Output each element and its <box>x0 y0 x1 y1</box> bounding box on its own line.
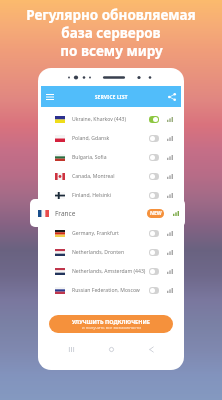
staticText: Germany, Frankfurt <box>72 230 119 237</box>
staticText: УЛУЧШИТЬ ПОДКЛЮЧЕНИЕ <box>72 318 150 325</box>
button[interactable]: Poland, Gdansk <box>41 129 181 148</box>
staticText: SERVICE LIST <box>95 94 128 100</box>
staticText: по всему миру <box>60 42 163 60</box>
staticText: Canada, Montreal <box>72 173 115 180</box>
button[interactable]: Menu <box>43 90 57 104</box>
button[interactable]: Netherlands, Dronten <box>41 243 181 262</box>
staticText: France <box>55 209 76 218</box>
staticText: и получить все возможности <box>82 325 141 331</box>
staticText: Poland, Gdansk <box>72 135 110 142</box>
button[interactable]: France <box>30 199 185 227</box>
staticText: Регулярно обновляемая <box>26 6 196 24</box>
staticText: Ukraine, Kharkov (443) <box>72 116 126 123</box>
button[interactable]: Connect <box>149 249 159 256</box>
button[interactable]: Connect <box>149 173 159 180</box>
staticText: Finland, Helsinki <box>72 192 112 199</box>
button[interactable]: Bulgaria, Sofia <box>41 148 181 167</box>
staticText: NEW <box>150 210 162 217</box>
staticText: Netherlands, Dronten <box>72 249 125 256</box>
staticText: база серверов <box>61 24 161 42</box>
button[interactable]: Connect <box>149 230 159 237</box>
button[interactable]: Connect <box>149 268 159 275</box>
button[interactable]: Russian Federation, Moscow <box>41 281 181 300</box>
staticText: Netherlands, Amsterdam (443) <box>72 268 146 275</box>
button[interactable]: Canada, Montreal <box>41 167 181 186</box>
button[interactable]: Finland, Helsinki <box>41 186 181 205</box>
button[interactable]: Connect <box>149 287 159 294</box>
staticText: Bulgaria, Sofia <box>72 154 107 161</box>
button[interactable]: Share <box>165 90 179 104</box>
button[interactable]: Disconnect <box>149 116 159 123</box>
staticText: Russian Federation, Moscow <box>72 287 140 294</box>
button[interactable]: Home <box>104 342 118 356</box>
button[interactable]: Ukraine, Kharkov (443) <box>41 110 181 129</box>
button[interactable]: Germany, Frankfurt <box>41 224 181 243</box>
button[interactable]: Connect <box>149 154 159 161</box>
button[interactable]: Netherlands, Amsterdam (443) <box>41 262 181 281</box>
button[interactable]: Connect <box>149 135 159 142</box>
button[interactable]: Back <box>144 342 158 356</box>
button[interactable]: Connect <box>149 192 159 199</box>
button[interactable]: УЛУЧШИТЬ ПОДКЛЮЧЕНИЕ <box>49 315 173 333</box>
button[interactable]: Recents <box>64 342 78 356</box>
